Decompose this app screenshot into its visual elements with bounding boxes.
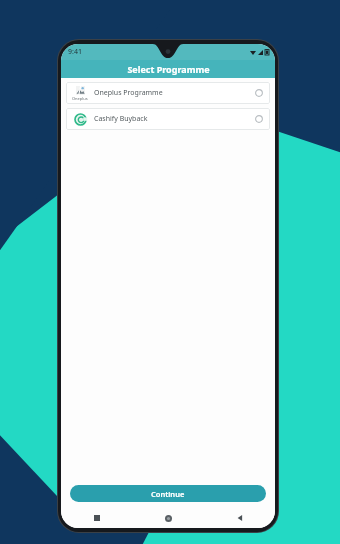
button[interactable]: Recent apps: [61, 508, 133, 528]
button[interactable]: Continue: [70, 485, 266, 502]
staticText: Cashify Buyback: [94, 114, 248, 124]
button[interactable]: Home: [133, 508, 204, 528]
staticText: Oneplus Programme: [94, 88, 248, 98]
staticText: Oneplus: [72, 96, 88, 101]
button[interactable]: Cashify Buyback: [66, 108, 270, 130]
button[interactable]: Oneplus: [66, 82, 270, 104]
staticText: Continue: [151, 489, 185, 499]
staticText: 9:41: [68, 47, 82, 57]
staticText: Select Programme: [127, 63, 210, 75]
button[interactable]: Back: [204, 508, 275, 528]
